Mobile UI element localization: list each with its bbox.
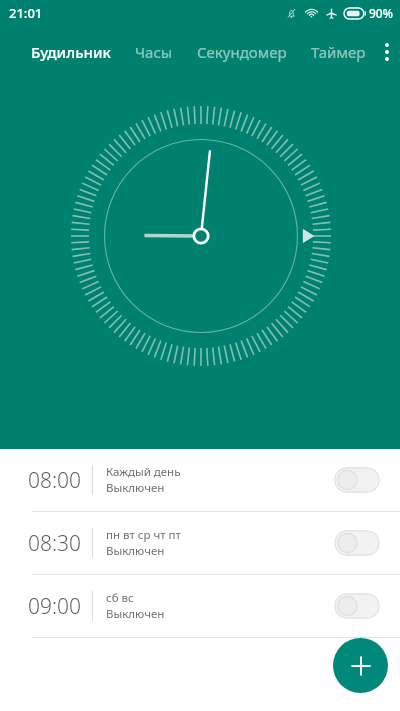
staticText: Выключен [106,480,165,496]
button[interactable]: Добавить будильник [333,638,388,693]
button[interactable]: Включить будильник [334,467,380,493]
staticText: 08:30 [28,529,88,558]
staticText: Будильник [31,42,111,62]
staticText: Часы [135,42,173,62]
staticText: пн вт ср чт пт [106,527,181,543]
staticText: 08:00 [28,466,88,495]
staticText: сб вс [106,590,134,606]
staticText: Выключен [106,543,165,559]
staticText: 09:00 [28,592,88,621]
staticText: Таймер [311,42,366,62]
button[interactable]: Таймер [310,36,367,68]
button[interactable]: Включить будильник [334,530,380,556]
button[interactable]: Будильник [30,36,112,68]
staticText: Каждый день [106,464,181,480]
staticText: 90% [369,5,393,21]
button[interactable]: 08:00 [0,449,400,511]
button[interactable]: Часы [134,36,174,68]
staticText: Секундомер [197,42,287,62]
button[interactable]: Ещё [376,32,398,72]
button[interactable]: Включить будильник [334,593,380,619]
staticText: Выключен [106,606,165,622]
button[interactable]: 08:30 [0,512,400,574]
button[interactable]: Секундомер [196,36,288,68]
staticText: 21:01 [9,4,43,22]
button[interactable]: 09:00 [0,575,400,637]
